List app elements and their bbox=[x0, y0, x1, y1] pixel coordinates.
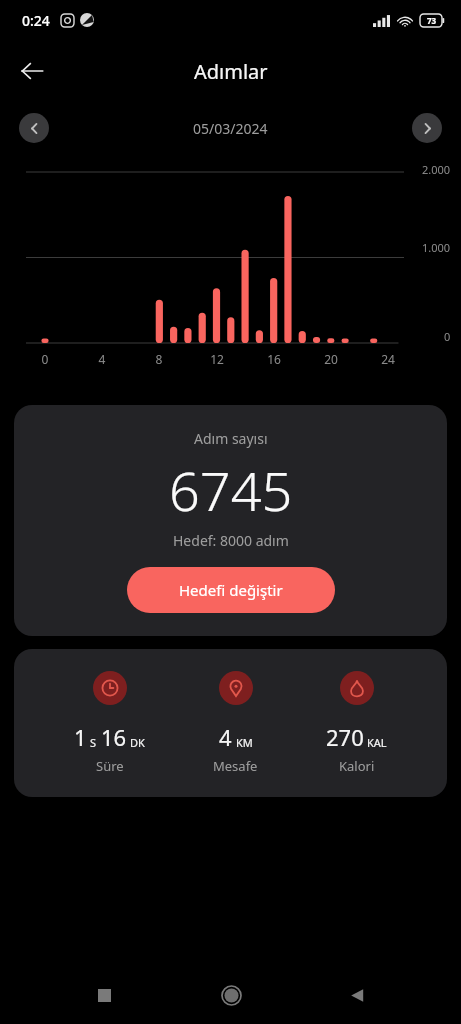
button[interactable]: Back bbox=[8, 47, 56, 95]
staticText: DK bbox=[130, 735, 145, 750]
staticText: S bbox=[90, 735, 97, 750]
button[interactable]: 1 bbox=[66, 671, 153, 775]
staticText: Süre bbox=[96, 757, 124, 775]
staticText: Hedef: 8000 adım bbox=[173, 531, 289, 550]
staticText: Kalori bbox=[339, 757, 375, 775]
button[interactable]: Hedefi değiştir bbox=[127, 567, 335, 613]
staticText: Adım sayısı bbox=[194, 429, 268, 448]
staticText: 1.000 bbox=[422, 240, 451, 255]
staticText: 73 bbox=[427, 15, 437, 26]
staticText: 0 bbox=[36, 351, 54, 367]
button[interactable]: Recent apps bbox=[81, 972, 127, 1018]
staticText: 20 bbox=[322, 351, 340, 367]
button[interactable]: 4 bbox=[205, 671, 266, 775]
staticText: 12 bbox=[208, 351, 226, 367]
staticText: 1 bbox=[74, 722, 87, 752]
staticText: 270 bbox=[326, 722, 364, 752]
staticText: 0 bbox=[444, 329, 451, 344]
staticText: Mesafe bbox=[213, 757, 258, 775]
staticText: 16 bbox=[265, 351, 283, 367]
button[interactable]: Home bbox=[208, 972, 254, 1018]
staticText: 16 bbox=[101, 722, 127, 752]
staticText: 2.000 bbox=[422, 162, 451, 177]
button[interactable]: Next day bbox=[412, 113, 442, 143]
staticText: 24 bbox=[379, 351, 397, 367]
staticText: Adımlar bbox=[194, 58, 268, 85]
staticText: 8 bbox=[150, 351, 168, 367]
button[interactable]: Back bbox=[334, 972, 380, 1018]
staticText: KAL bbox=[367, 735, 387, 750]
button[interactable]: 270 bbox=[318, 671, 395, 775]
staticText: 05/03/2024 bbox=[193, 119, 268, 138]
staticText: 4 bbox=[219, 722, 232, 752]
staticText: 6745 bbox=[169, 453, 293, 527]
staticText: Hedefi değiştir bbox=[179, 580, 283, 600]
staticText: 0:24 bbox=[22, 11, 50, 30]
staticText: KM bbox=[236, 735, 253, 750]
button[interactable]: Previous day bbox=[19, 113, 49, 143]
staticText: 4 bbox=[93, 351, 111, 367]
